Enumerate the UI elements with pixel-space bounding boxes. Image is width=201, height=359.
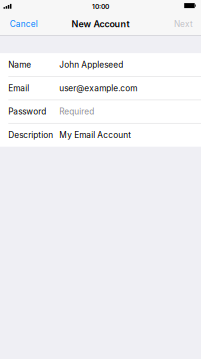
staticText: Next: [174, 19, 193, 29]
button[interactable]: Next: [168, 11, 201, 35]
staticText: Name: [8, 60, 31, 70]
staticText: Cancel: [10, 19, 38, 29]
staticText: John Appleseed: [59, 60, 123, 70]
staticText: Required: [59, 107, 94, 117]
staticText: 10:00: [92, 2, 109, 11]
button[interactable]: Description: [0, 123, 201, 147]
staticText: Email: [8, 83, 29, 93]
button[interactable]: Name: [0, 53, 201, 76]
staticText: Password: [8, 107, 46, 117]
button[interactable]: Email: [0, 76, 201, 100]
button[interactable]: Cancel: [0, 11, 44, 35]
staticText: New Account: [71, 18, 129, 29]
staticText: user@example.com: [59, 83, 137, 93]
staticText: My Email Account: [59, 130, 131, 140]
button[interactable]: Password: [0, 100, 201, 123]
staticText: Description: [8, 130, 53, 140]
